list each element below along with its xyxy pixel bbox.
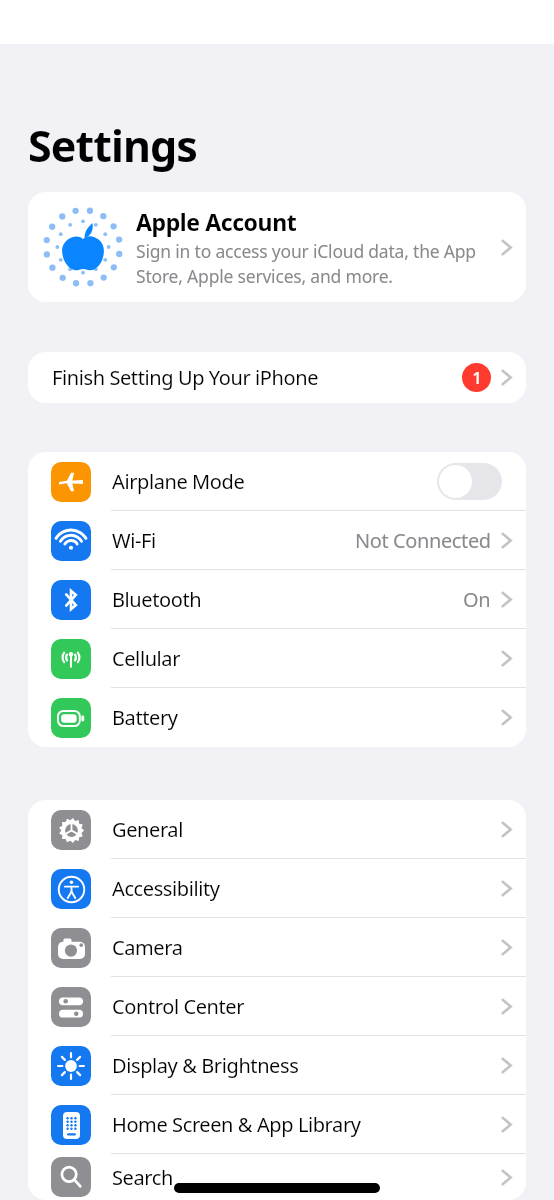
button[interactable]: Home Screen & App Library <box>28 1095 526 1154</box>
staticText: Home Screen & App Library <box>112 1111 501 1138</box>
button[interactable]: Search <box>28 1154 526 1200</box>
staticText: Camera <box>112 934 501 961</box>
staticText: Apple Account <box>136 206 297 237</box>
button[interactable]: Accessibility <box>28 859 526 918</box>
button[interactable]: Camera <box>28 918 526 977</box>
button[interactable]: Wi-Fi <box>28 511 526 570</box>
staticText: Control Center <box>112 993 501 1020</box>
staticText: Display & Brightness <box>112 1052 501 1079</box>
button[interactable]: Finish Setting Up Your iPhone <box>28 352 526 403</box>
button[interactable]: Bluetooth <box>28 570 526 629</box>
button[interactable]: General <box>28 800 526 859</box>
staticText: Bluetooth <box>112 586 463 613</box>
staticText: Sign in to access your iCloud data, the … <box>136 239 501 288</box>
button[interactable]: Battery <box>28 688 526 747</box>
button[interactable]: Control Center <box>28 977 526 1036</box>
staticText: Not Connected <box>355 527 491 554</box>
staticText: On <box>463 586 491 613</box>
staticText: Battery <box>112 704 501 731</box>
button[interactable]: Display & Brightness <box>28 1036 526 1095</box>
staticText: Finish Setting Up Your iPhone <box>52 364 462 391</box>
staticText: Airplane Mode <box>112 468 437 495</box>
button[interactable]: Cellular <box>28 629 526 688</box>
staticText: Wi-Fi <box>112 527 355 554</box>
staticText: Settings <box>28 116 198 175</box>
staticText: 1 <box>472 366 482 389</box>
staticText: Cellular <box>112 645 501 672</box>
button[interactable]: Airplane Mode <box>28 452 526 511</box>
staticText: General <box>112 816 501 843</box>
staticText: Accessibility <box>112 875 501 902</box>
button[interactable]: Apple Account <box>28 192 526 302</box>
staticText: Search <box>112 1164 501 1191</box>
other: Airplane Mode, off <box>437 463 502 500</box>
